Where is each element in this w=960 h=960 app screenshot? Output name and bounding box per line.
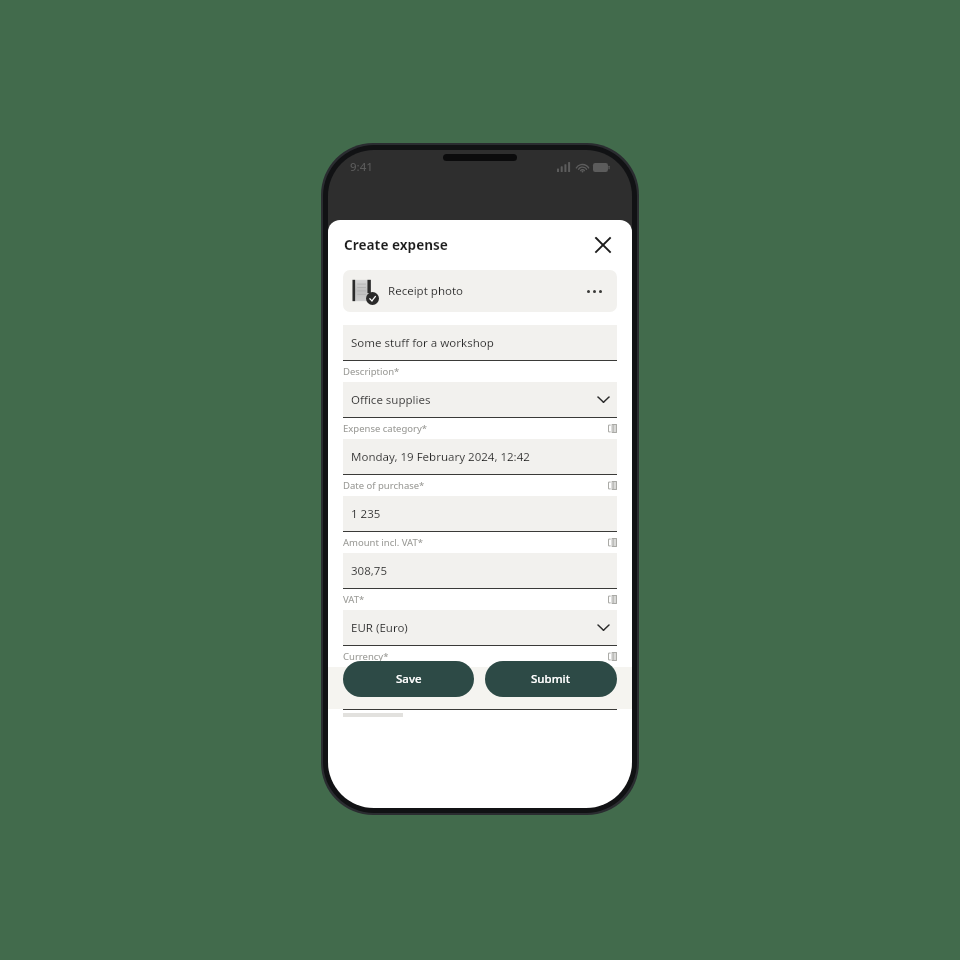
button[interactable]: Submit xyxy=(485,661,617,697)
staticText: 308,75 xyxy=(351,563,387,579)
button[interactable]: 308,75 xyxy=(343,553,617,610)
staticText: Date of purchase* xyxy=(343,479,425,492)
button[interactable]: Save xyxy=(343,661,474,697)
staticText: Receipt photo xyxy=(388,283,464,299)
button[interactable]: Some stuff for a workshop xyxy=(343,325,617,382)
staticText: Submit xyxy=(531,671,571,687)
staticText: Expense category* xyxy=(343,422,428,435)
button[interactable]: Office supplies xyxy=(343,382,617,439)
staticText: Amount incl. VAT* xyxy=(343,536,423,549)
button[interactable]: Monday, 19 February 2024, 12:42 xyxy=(343,439,617,496)
button[interactable]: EUR (Euro) xyxy=(343,610,617,667)
staticText: Description* xyxy=(343,365,400,378)
button[interactable]: Close xyxy=(586,228,620,262)
staticText: 1 235 xyxy=(351,506,381,522)
staticText: 9:41 xyxy=(350,159,373,175)
staticText: VAT* xyxy=(343,593,365,606)
staticText: Monday, 19 February 2024, 12:42 xyxy=(351,449,530,465)
staticText: Office supplies xyxy=(351,392,431,408)
staticText: Currency* xyxy=(343,650,389,663)
staticText: EUR (Euro) xyxy=(351,620,408,636)
staticText: Some stuff for a workshop xyxy=(351,335,494,351)
button[interactable]: Receipt photo xyxy=(343,270,617,312)
staticText: Save xyxy=(396,671,422,687)
button[interactable]: More options xyxy=(580,277,608,305)
button[interactable]: 1 235 xyxy=(343,496,617,553)
staticText: Create expense xyxy=(344,236,448,254)
